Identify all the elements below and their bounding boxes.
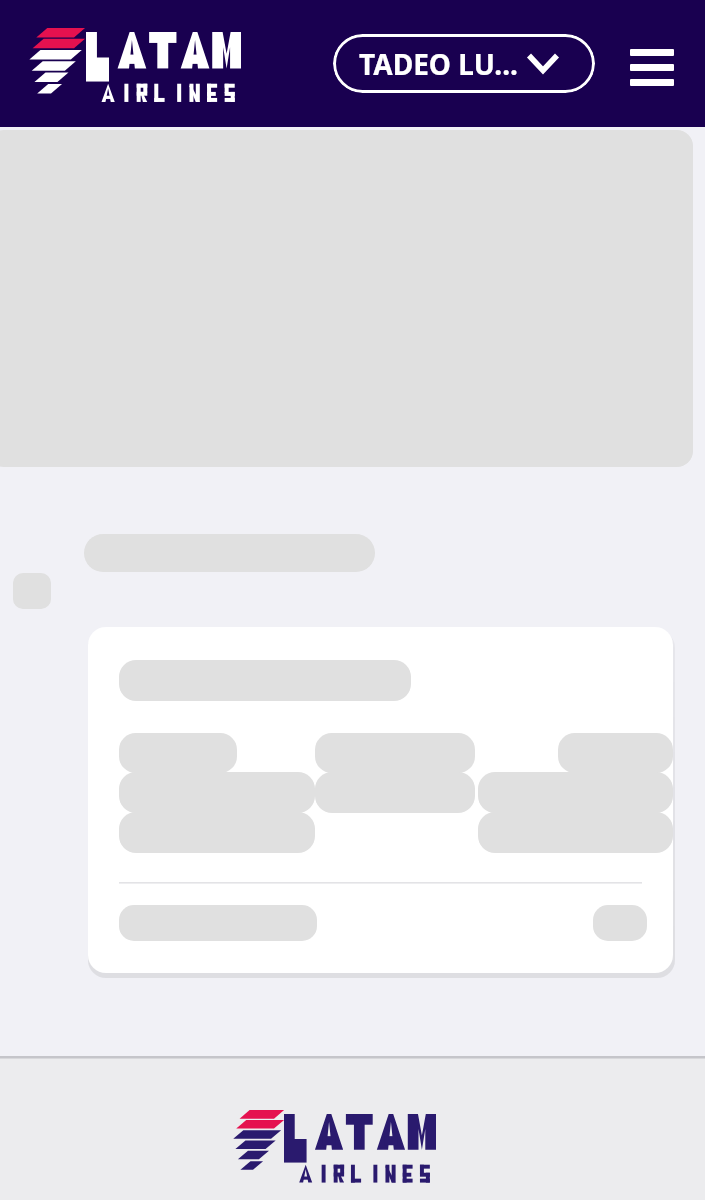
- button[interactable]: Menu: [622, 38, 682, 90]
- button[interactable]: TADEO LU...: [333, 34, 595, 93]
- button[interactable]: [88, 627, 673, 973]
- staticText: TADEO LU...: [359, 45, 518, 83]
- button[interactable]: LATAM Airlines: [232, 1110, 442, 1176]
- button[interactable]: LATAM Airlines home: [28, 26, 243, 100]
